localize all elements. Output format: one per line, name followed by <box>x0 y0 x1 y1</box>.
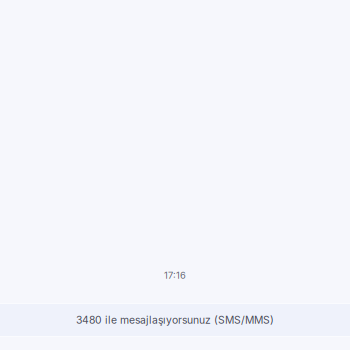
button[interactable]: 3480 ile mesajlaşıyorsunuz (SMS/MMS) <box>0 304 350 336</box>
staticText: 3480 ile mesajlaşıyorsunuz (SMS/MMS) <box>76 314 274 326</box>
staticText: 17:16 <box>164 270 186 281</box>
